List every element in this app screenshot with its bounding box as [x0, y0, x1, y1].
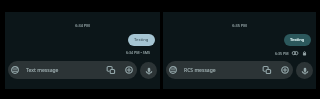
button[interactable]: Gallery	[107, 66, 115, 74]
staticText: 6:34 PM • SMS	[126, 50, 151, 55]
button[interactable]: Testing	[128, 34, 155, 46]
staticText: 6:34 PM	[5, 23, 160, 28]
button[interactable]: Voice message	[140, 62, 157, 79]
staticText: 6:35 PM	[163, 23, 316, 28]
button[interactable]: RCS message	[166, 61, 293, 79]
staticText: 6:35 PM	[275, 51, 289, 56]
staticText: Testing	[290, 37, 305, 43]
button[interactable]: Voice message	[296, 62, 313, 79]
button[interactable]: Text message	[8, 61, 137, 79]
button[interactable]: Add attachment	[125, 66, 133, 74]
staticText: RCS message	[184, 67, 216, 74]
staticText: Text message	[26, 67, 59, 74]
button[interactable]: Testing	[284, 34, 311, 46]
button[interactable]: Add attachment	[281, 66, 289, 74]
staticText: Testing	[134, 37, 149, 43]
button[interactable]: Gallery	[263, 66, 271, 74]
